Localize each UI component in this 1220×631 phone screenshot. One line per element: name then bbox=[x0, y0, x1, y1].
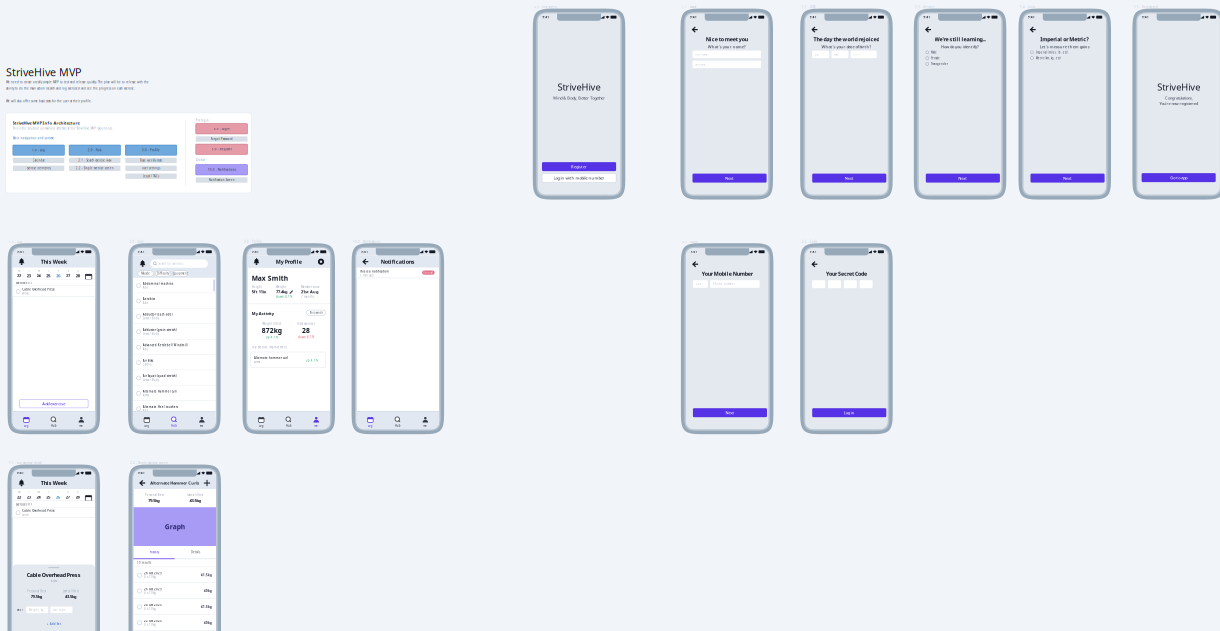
button[interactable]: Next bbox=[926, 174, 1000, 183]
button[interactable]: Hub bbox=[384, 415, 412, 429]
staticText: Difficulty bbox=[157, 272, 169, 275]
button[interactable]: M bbox=[14, 268, 24, 280]
staticText: Personal Best bbox=[145, 493, 164, 497]
button[interactable]: S bbox=[73, 268, 83, 280]
staticText: 2.2 - Single exercise screen bbox=[130, 461, 168, 465]
button[interactable]: Me bbox=[412, 415, 439, 429]
button[interactable]: Settings bbox=[315, 256, 326, 268]
staticText: Log bbox=[259, 424, 264, 427]
button[interactable]: Add bbox=[201, 477, 212, 489]
button[interactable]: History bbox=[133, 546, 175, 559]
button[interactable]: Notifications bbox=[16, 256, 27, 268]
button[interactable]: F bbox=[53, 489, 63, 501]
button[interactable]: Aerobics bbox=[133, 293, 216, 309]
button[interactable]: S bbox=[63, 268, 73, 280]
button[interactable]: W bbox=[34, 268, 43, 280]
staticText: Alternate hammer curl bbox=[254, 356, 288, 360]
button[interactable]: Notifications bbox=[251, 256, 262, 268]
button[interactable]: Air Bike bbox=[133, 355, 216, 370]
staticText: 79.5kg bbox=[31, 594, 43, 599]
staticText: User settings bbox=[142, 166, 160, 170]
button[interactable]: Adductor (each side) bbox=[133, 309, 216, 324]
button[interactable]: Next bbox=[692, 174, 767, 183]
button[interactable]: Adductor (groin stretch) bbox=[133, 324, 216, 339]
button[interactable]: Hub bbox=[275, 415, 302, 429]
button[interactable]: Alternate Heel touchers bbox=[133, 401, 216, 416]
button[interactable]: Next bbox=[812, 174, 886, 183]
button[interactable]: T bbox=[24, 489, 34, 501]
staticText: Personal Best bbox=[27, 589, 46, 593]
button[interactable]: Log bbox=[13, 415, 40, 429]
button[interactable]: + Add Set bbox=[12, 620, 95, 627]
staticText: Abs bbox=[143, 286, 148, 289]
staticText: 3.0 - Profile bbox=[142, 148, 160, 152]
button[interactable]: Cable Overhead Press bbox=[12, 507, 95, 518]
button[interactable]: Go to app bbox=[1142, 173, 1216, 182]
button[interactable]: Muscle bbox=[138, 271, 153, 276]
staticText: M bbox=[18, 490, 20, 494]
button[interactable]: Me bbox=[188, 415, 216, 429]
staticText: 9:41 bbox=[923, 15, 930, 19]
button[interactable]: Back bbox=[137, 477, 148, 489]
staticText: Hub bbox=[395, 424, 401, 427]
button[interactable]: Hub bbox=[161, 415, 188, 429]
button[interactable]: W bbox=[34, 489, 43, 501]
staticText: Air Bike bbox=[143, 359, 154, 362]
button[interactable]: M bbox=[14, 489, 24, 501]
button[interactable]: Next bbox=[693, 408, 767, 417]
staticText: My Profile bbox=[276, 258, 302, 265]
button[interactable]: Air Squat (quad stretch) bbox=[133, 370, 216, 386]
staticText: 5.2 - DOB bbox=[802, 5, 816, 9]
staticText: Go to app bbox=[1170, 175, 1187, 180]
staticText: Me bbox=[314, 424, 318, 427]
button[interactable]: Me bbox=[68, 415, 95, 429]
button[interactable]: Back bbox=[690, 260, 701, 269]
button[interactable]: Abdominal machine bbox=[133, 278, 216, 293]
button[interactable]: Log bbox=[247, 415, 275, 429]
button[interactable]: Calendar bbox=[84, 271, 93, 283]
button[interactable]: Equipment bbox=[173, 271, 188, 276]
button[interactable]: Back bbox=[809, 25, 820, 34]
button[interactable]: Advanced Kettlebell Windmill bbox=[133, 339, 216, 355]
button[interactable]: T bbox=[24, 268, 34, 280]
button[interactable]: Log bbox=[133, 415, 161, 429]
button[interactable]: Add exercise bbox=[20, 399, 88, 408]
staticText: Search for exercises bbox=[158, 262, 183, 265]
button[interactable]: S bbox=[63, 489, 73, 501]
staticText: Arms bbox=[22, 513, 28, 516]
button[interactable]: Log bbox=[357, 415, 384, 429]
button[interactable]: T bbox=[43, 268, 53, 280]
staticText: Arms bbox=[143, 394, 149, 397]
button[interactable]: Back bbox=[360, 256, 371, 268]
button[interactable]: S bbox=[73, 489, 82, 501]
button[interactable]: Back bbox=[689, 25, 700, 34]
button[interactable]: Notifications bbox=[138, 259, 147, 268]
button[interactable]: Back bbox=[809, 260, 820, 269]
staticText: 9:41 bbox=[1142, 15, 1149, 19]
button[interactable]: F bbox=[53, 268, 63, 280]
button[interactable]: Details bbox=[175, 546, 216, 559]
button[interactable]: Alternate Hammer curl bbox=[133, 386, 216, 401]
staticText: Alternate Hammer curl bbox=[143, 390, 177, 393]
staticText: 23 bbox=[27, 273, 31, 278]
button[interactable]: Next bbox=[1030, 174, 1105, 183]
button[interactable]: Log in with mobile number bbox=[542, 173, 616, 182]
button[interactable]: Hub bbox=[40, 415, 68, 429]
staticText: This is the structure primarily to attem… bbox=[12, 127, 113, 130]
button[interactable]: Back bbox=[1027, 25, 1038, 34]
button[interactable]: Notifications bbox=[16, 477, 27, 489]
button[interactable]: Back bbox=[923, 25, 934, 34]
staticText: 5.0 - Register bbox=[212, 147, 232, 151]
button[interactable]: Log in bbox=[812, 408, 886, 417]
button[interactable]: T bbox=[43, 489, 53, 501]
button[interactable]: This week bbox=[306, 310, 325, 315]
staticText: Next bbox=[725, 410, 734, 415]
button[interactable]: Cable Overhead Press bbox=[13, 286, 95, 297]
button[interactable]: Difficulty bbox=[155, 271, 171, 276]
button[interactable]: Calendar bbox=[84, 492, 93, 504]
staticText: 21st Aug bbox=[301, 289, 319, 294]
button[interactable]: Me bbox=[302, 415, 330, 429]
staticText: Graph bbox=[165, 522, 185, 531]
staticText: W bbox=[37, 490, 39, 494]
button[interactable]: Register bbox=[542, 162, 616, 171]
